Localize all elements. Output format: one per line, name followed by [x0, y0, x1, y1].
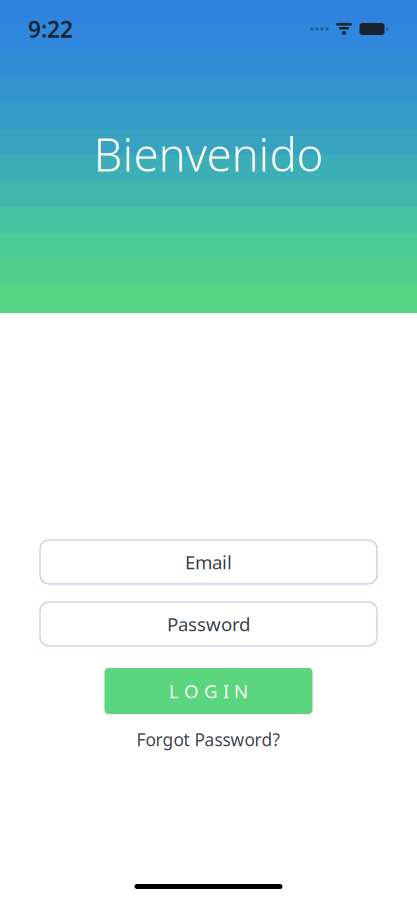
button[interactable]: Password — [40, 602, 377, 646]
staticText: Email — [185, 550, 232, 574]
staticText: Password — [167, 612, 250, 636]
staticText: L O G I N — [169, 679, 248, 703]
staticText: Bienvenido — [93, 124, 323, 184]
staticText: 9:22 — [28, 14, 73, 44]
button[interactable]: L O G I N — [104, 668, 312, 714]
button[interactable]: Forgot Password? — [124, 722, 292, 757]
staticText: Forgot Password? — [136, 728, 280, 751]
button[interactable]: Email — [40, 540, 377, 584]
